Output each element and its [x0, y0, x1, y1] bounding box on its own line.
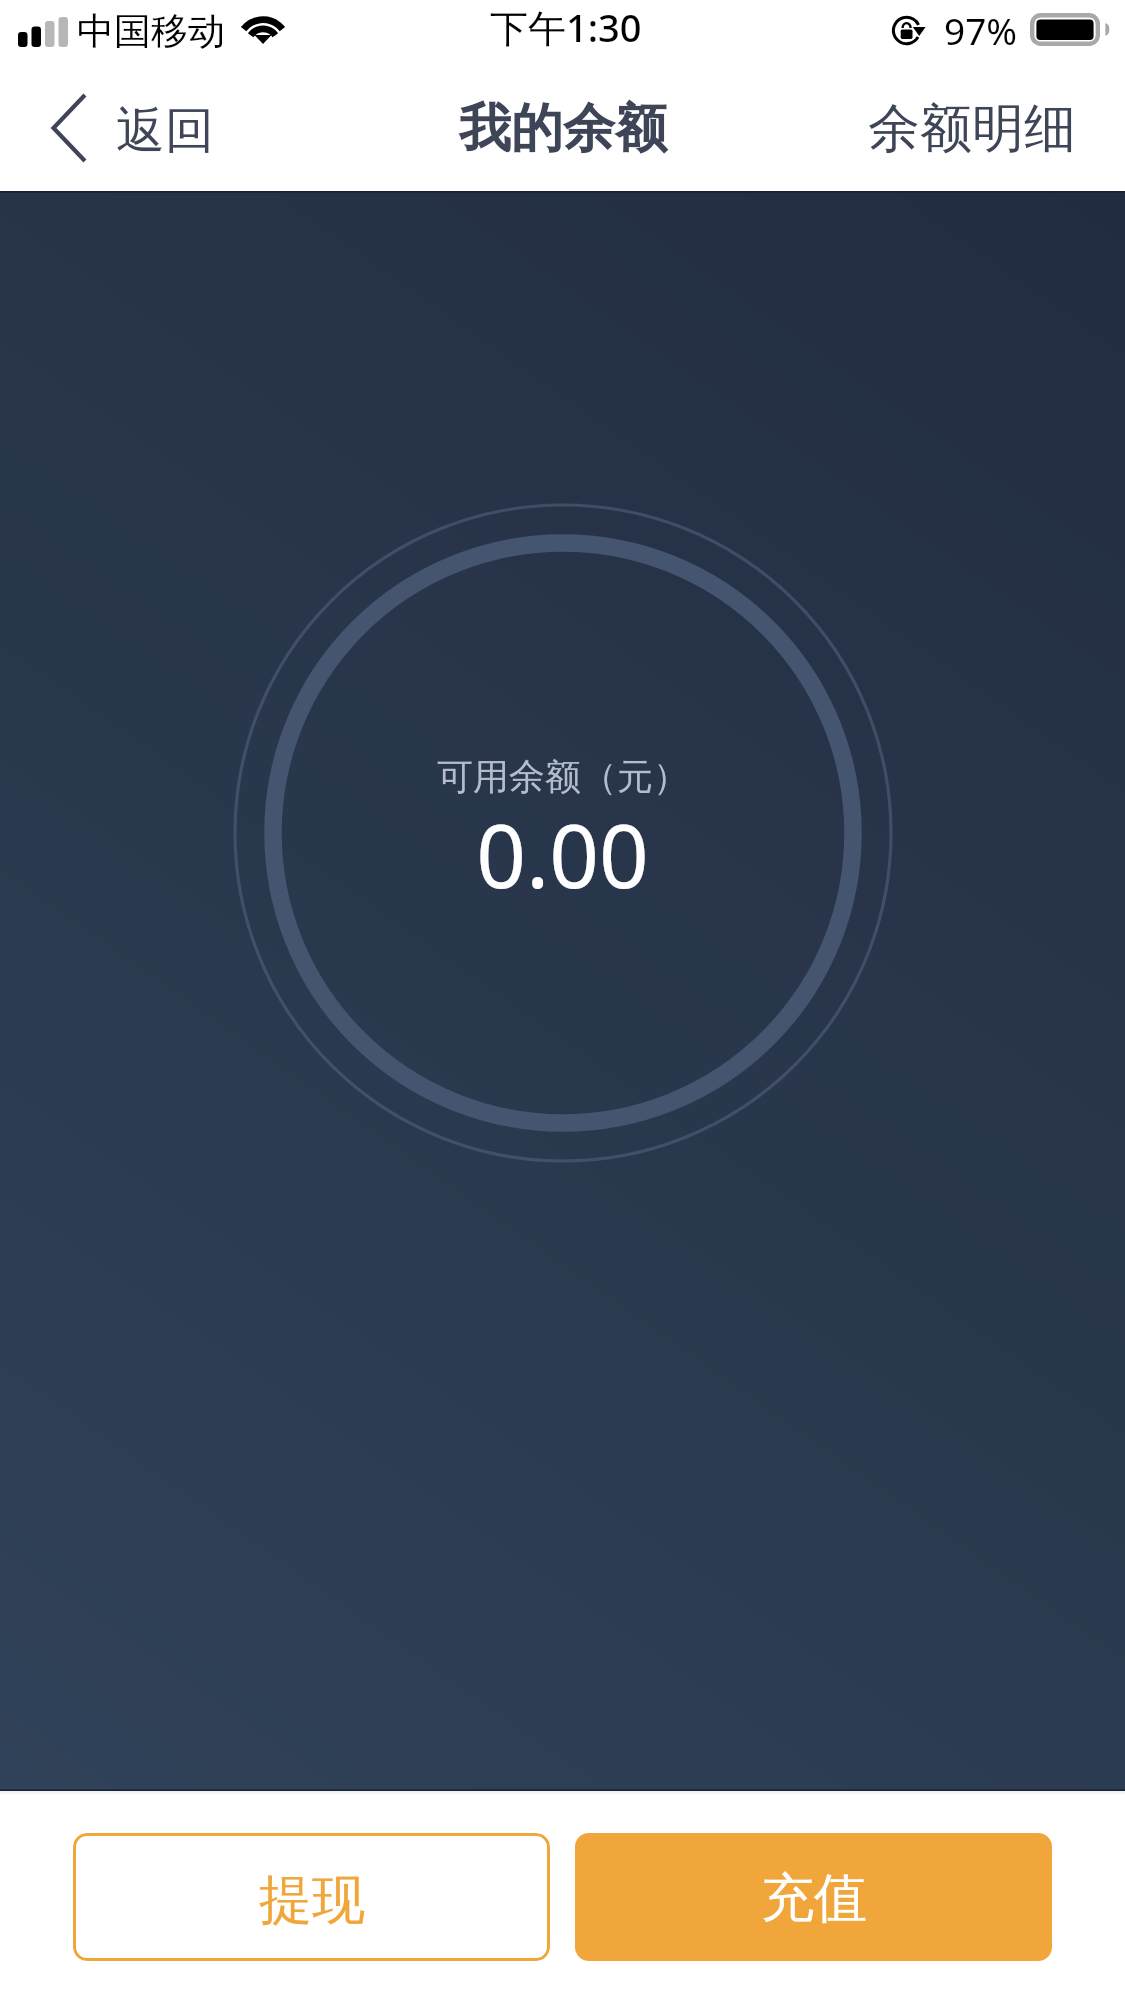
staticText: 充值	[761, 1865, 867, 1932]
button[interactable]: 返回	[0, 79, 234, 183]
staticText: 0.00	[476, 795, 649, 913]
button[interactable]: 提现	[73, 1833, 550, 1961]
staticText: 提现	[259, 1867, 365, 1934]
button[interactable]: 充值	[575, 1833, 1052, 1961]
staticText: 返回	[116, 100, 214, 162]
staticText: 我的余额	[459, 96, 667, 162]
staticText: 余额明细	[868, 96, 1076, 162]
staticText: 下午1:30	[490, 1, 642, 53]
button[interactable]: 余额明细	[848, 80, 1125, 182]
other: 返回	[51, 94, 86, 162]
staticText: 97%	[944, 5, 1018, 55]
staticText: 可用余额（元）	[437, 754, 689, 799]
staticText: 中国移动	[77, 8, 225, 55]
